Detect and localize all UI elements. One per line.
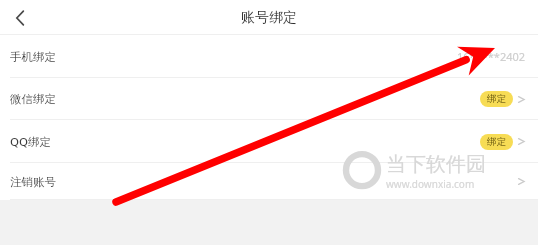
button[interactable]: 微信绑定: [0, 78, 538, 120]
staticText: 微信绑定: [10, 92, 56, 106]
staticText: 手机绑定: [10, 50, 56, 64]
button[interactable]: 手机绑定: [0, 35, 538, 78]
staticText: QQ绑定: [10, 134, 52, 150]
staticText: 账号绑定: [241, 9, 297, 27]
staticText: 绑定: [487, 136, 506, 148]
button[interactable]: 绑定: [480, 91, 513, 107]
button[interactable]: Back: [6, 4, 34, 32]
staticText: 注销账号: [10, 175, 56, 189]
staticText: 16*****2402: [457, 49, 526, 64]
staticText: 绑定: [487, 93, 506, 105]
button[interactable]: 绑定: [480, 134, 513, 150]
button[interactable]: 注销账号: [0, 163, 538, 200]
staticText: 当下软件园: [386, 152, 486, 177]
staticText: www.downxia.com: [386, 177, 475, 191]
button[interactable]: QQ绑定: [0, 120, 538, 163]
